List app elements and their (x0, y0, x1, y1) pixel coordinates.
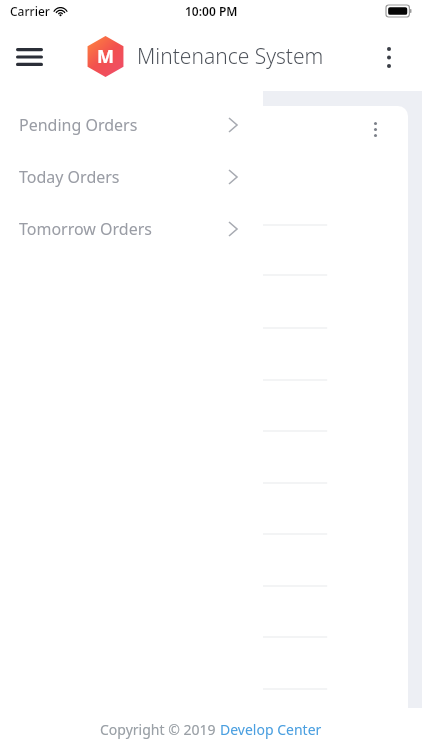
staticText: Mintenance System (137, 42, 324, 71)
button[interactable]: Today Orders (0, 151, 263, 203)
staticText: M (97, 44, 114, 69)
staticText: Today Orders (19, 166, 120, 188)
button[interactable]: Card options (364, 114, 386, 144)
staticText: Copyright © 2019 (100, 720, 220, 739)
staticText: Tomorrow Orders (19, 218, 153, 240)
button[interactable]: Tomorrow Orders (0, 203, 263, 255)
staticText: Carrier (10, 3, 50, 19)
button[interactable]: More options (376, 38, 402, 76)
staticText: 10:00 PM (185, 3, 238, 19)
button[interactable]: Pending Orders (0, 99, 263, 151)
button[interactable]: Develop Center (220, 720, 322, 739)
staticText: Pending Orders (19, 114, 138, 136)
staticText: Develop Center (220, 720, 322, 739)
button[interactable]: Open navigation menu (8, 36, 50, 78)
